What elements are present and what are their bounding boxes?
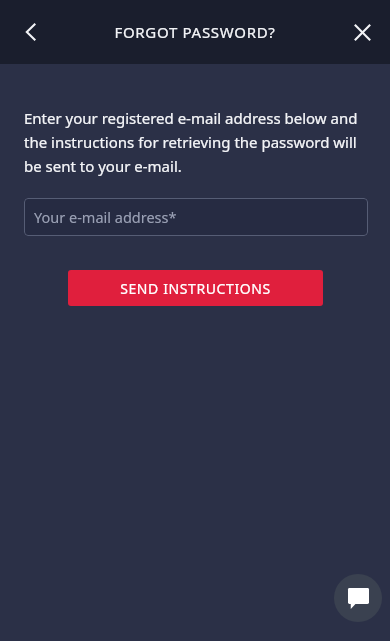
button[interactable]: Chat support — [334, 574, 382, 622]
staticText: FORGOT PASSWORD? — [114, 22, 276, 42]
staticText: SEND INSTRUCTIONS — [120, 279, 271, 298]
button[interactable]: Close — [340, 10, 384, 54]
staticText: Enter your registered e-mail address bel… — [24, 108, 360, 176]
button[interactable]: Your e-mail address* — [24, 198, 368, 236]
button[interactable]: Back — [9, 10, 53, 54]
staticText: Your e-mail address* — [34, 207, 177, 227]
button[interactable]: SEND INSTRUCTIONS — [68, 270, 323, 306]
